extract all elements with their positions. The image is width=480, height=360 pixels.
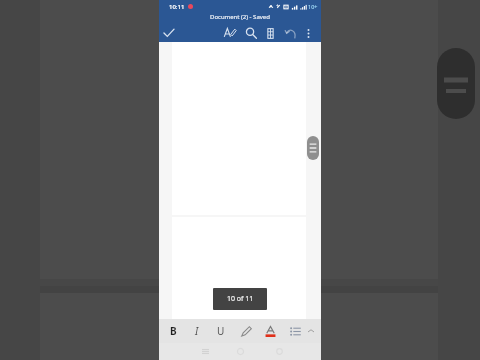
button[interactable]: Underline [213, 319, 229, 343]
button[interactable]: Bullet list [287, 319, 303, 343]
staticText: U [217, 324, 225, 338]
button[interactable]: Recent apps [196, 343, 214, 360]
staticText: 10 of 11 [227, 294, 254, 304]
staticText: Document (2) - Saved [210, 13, 270, 21]
staticText: 10+ [308, 3, 318, 10]
button[interactable]: More options [299, 24, 317, 42]
button[interactable]: Done [160, 24, 178, 42]
button[interactable]: Italic [189, 319, 205, 343]
button[interactable]: Undo [282, 24, 300, 42]
button[interactable]: Format text [221, 24, 239, 42]
button[interactable]: Table [261, 24, 279, 42]
button[interactable]: Bold [165, 319, 181, 343]
staticText: I [195, 324, 199, 338]
button[interactable]: Page 10 of 11 [213, 288, 267, 310]
button[interactable]: Expand toolbar [305, 325, 317, 337]
staticText: B [170, 324, 177, 338]
button[interactable]: Font colour [262, 319, 278, 343]
button[interactable]: Search [242, 24, 260, 42]
button[interactable]: Scroll [307, 136, 319, 160]
button[interactable]: Highlight [238, 319, 254, 343]
staticText: 10:11 [169, 3, 185, 11]
